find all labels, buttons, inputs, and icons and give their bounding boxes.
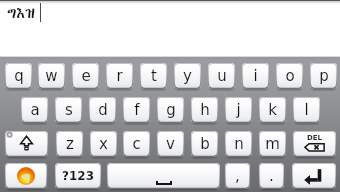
button[interactable]: h <box>191 97 218 124</box>
staticText: w <box>45 67 58 84</box>
button[interactable]: Enter <box>292 163 336 190</box>
button[interactable]: c <box>123 131 150 158</box>
staticText: c <box>132 135 141 152</box>
staticText: e <box>81 67 91 84</box>
button[interactable]: b <box>191 131 218 158</box>
button[interactable]: s <box>55 97 82 124</box>
button[interactable]: m <box>259 131 286 158</box>
staticText: ?123 <box>62 169 95 183</box>
staticText: j <box>236 101 241 118</box>
button[interactable]: i <box>242 63 269 90</box>
staticText: DEL <box>307 134 323 142</box>
button[interactable]: g <box>157 97 184 124</box>
button[interactable]: ?123 <box>55 163 101 190</box>
button[interactable]: n <box>225 131 252 158</box>
button[interactable]: a <box>21 97 48 124</box>
staticText: m <box>265 135 280 152</box>
button[interactable]: o <box>276 63 303 90</box>
staticText: ግእዝ <box>7 3 35 23</box>
button[interactable]: t <box>140 63 167 90</box>
staticText: f <box>134 101 140 118</box>
staticText: n <box>234 135 244 152</box>
staticText: k <box>268 101 277 118</box>
staticText: , <box>235 167 240 184</box>
staticText: x <box>99 135 108 152</box>
staticText: b <box>200 135 210 152</box>
staticText: q <box>14 67 24 84</box>
staticText: p <box>319 67 329 84</box>
button[interactable]: Shift <box>5 131 48 158</box>
staticText: o <box>285 67 295 84</box>
button[interactable]: u <box>208 63 235 90</box>
staticText: l <box>304 101 309 118</box>
staticText: s <box>65 101 73 118</box>
staticText: v <box>166 135 175 152</box>
button[interactable]: p <box>310 63 337 90</box>
button[interactable]: w <box>38 63 65 90</box>
button[interactable]: q <box>5 63 32 90</box>
button[interactable]: z <box>56 131 83 158</box>
button[interactable]: x <box>90 131 117 158</box>
button[interactable]: , <box>225 163 250 190</box>
staticText: y <box>183 67 192 84</box>
button[interactable]: d <box>89 97 116 124</box>
button[interactable]: v <box>157 131 184 158</box>
button[interactable]: y <box>174 63 201 90</box>
button[interactable]: j <box>225 97 252 124</box>
staticText: a <box>30 101 40 118</box>
button[interactable]: k <box>259 97 286 124</box>
staticText: t <box>151 67 157 84</box>
staticText: g <box>166 101 176 118</box>
staticText: r <box>116 67 123 84</box>
button[interactable]: r <box>106 63 133 90</box>
staticText: ግ <box>21 168 31 186</box>
staticText: u <box>217 67 227 84</box>
button[interactable]: e <box>72 63 99 90</box>
staticText: i <box>253 67 258 84</box>
button[interactable]: Delete <box>293 131 336 158</box>
button[interactable]: . <box>259 163 284 190</box>
staticText: . <box>269 167 274 184</box>
staticText: z <box>66 135 74 152</box>
button[interactable]: Space <box>107 163 220 190</box>
button[interactable]: f <box>123 97 150 124</box>
staticText: h <box>200 101 210 118</box>
button[interactable]: Change language <box>5 163 47 190</box>
staticText: d <box>98 101 108 118</box>
button[interactable]: l <box>293 97 320 124</box>
